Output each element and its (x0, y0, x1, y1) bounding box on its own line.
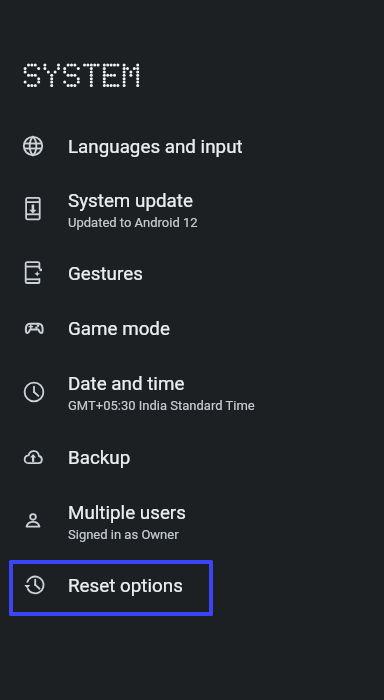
button[interactable]: Reset options (9, 560, 213, 616)
staticText: Reset options (68, 575, 183, 597)
staticText: Gestures (68, 263, 143, 285)
button[interactable] (0, 301, 384, 356)
staticText: Updated to Android 12 (68, 215, 198, 230)
staticText: GMT+05:30 India Standard Time (68, 398, 255, 413)
staticText: Game mode (68, 318, 170, 340)
staticText: Languages and input (68, 136, 243, 158)
button[interactable] (0, 246, 384, 301)
button[interactable] (0, 173, 384, 246)
button[interactable] (0, 356, 384, 429)
staticText: Backup (68, 447, 131, 469)
button[interactable] (0, 557, 384, 615)
staticText: System update (68, 190, 193, 212)
button[interactable] (0, 118, 384, 173)
staticText: Date and time (68, 373, 185, 395)
staticText: Multiple users (68, 502, 186, 524)
button[interactable] (0, 429, 384, 484)
staticText: Signed in as Owner (68, 527, 179, 542)
button[interactable] (0, 484, 384, 557)
